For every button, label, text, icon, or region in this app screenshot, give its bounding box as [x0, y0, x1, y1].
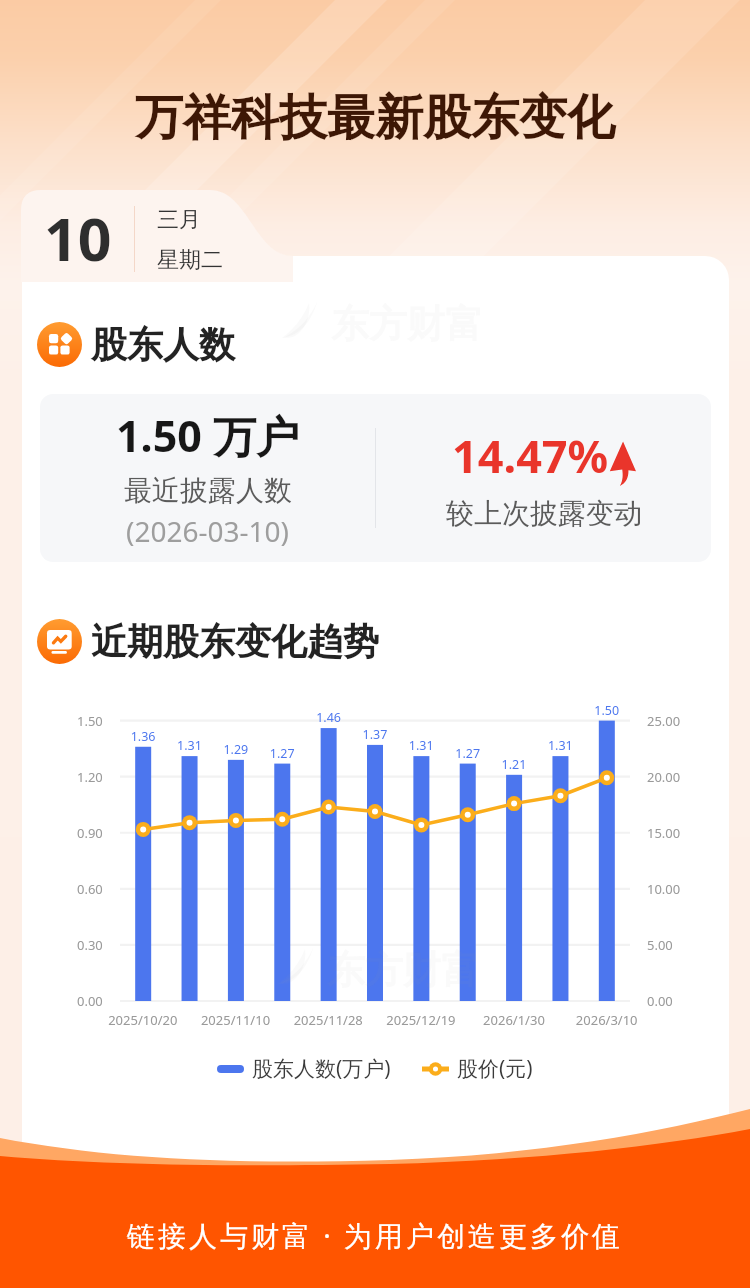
staticText: 14.47% — [452, 425, 609, 486]
staticText: 链接人与财富 · 为用户创造更多价值 — [0, 1216, 750, 1254]
staticText: 东方财富 — [327, 946, 479, 994]
other: 近期股东变化趋势 — [37, 619, 82, 664]
staticText: 股价(元) — [457, 1054, 533, 1083]
staticText: 1.50 万户 — [116, 406, 300, 465]
staticText: (2026-03-10) — [126, 512, 289, 550]
staticText: 星期二 — [157, 246, 223, 274]
staticText: 较上次披露变动 — [446, 496, 642, 531]
staticText: 股东人数 — [91, 322, 235, 367]
staticText: 股东人数(万户) — [252, 1054, 391, 1083]
staticText: 最近披露人数 — [124, 473, 292, 508]
other: 股东人数 — [37, 322, 82, 367]
button[interactable]: 近期股东变化趋势 — [37, 613, 379, 669]
staticText: 10 — [44, 198, 112, 278]
staticText: 万祥科技最新股东变化 — [0, 88, 750, 148]
button[interactable]: 股东人数 — [37, 316, 235, 372]
staticText: 三月 — [157, 206, 201, 234]
staticText: 近期股东变化趋势 — [91, 619, 379, 664]
